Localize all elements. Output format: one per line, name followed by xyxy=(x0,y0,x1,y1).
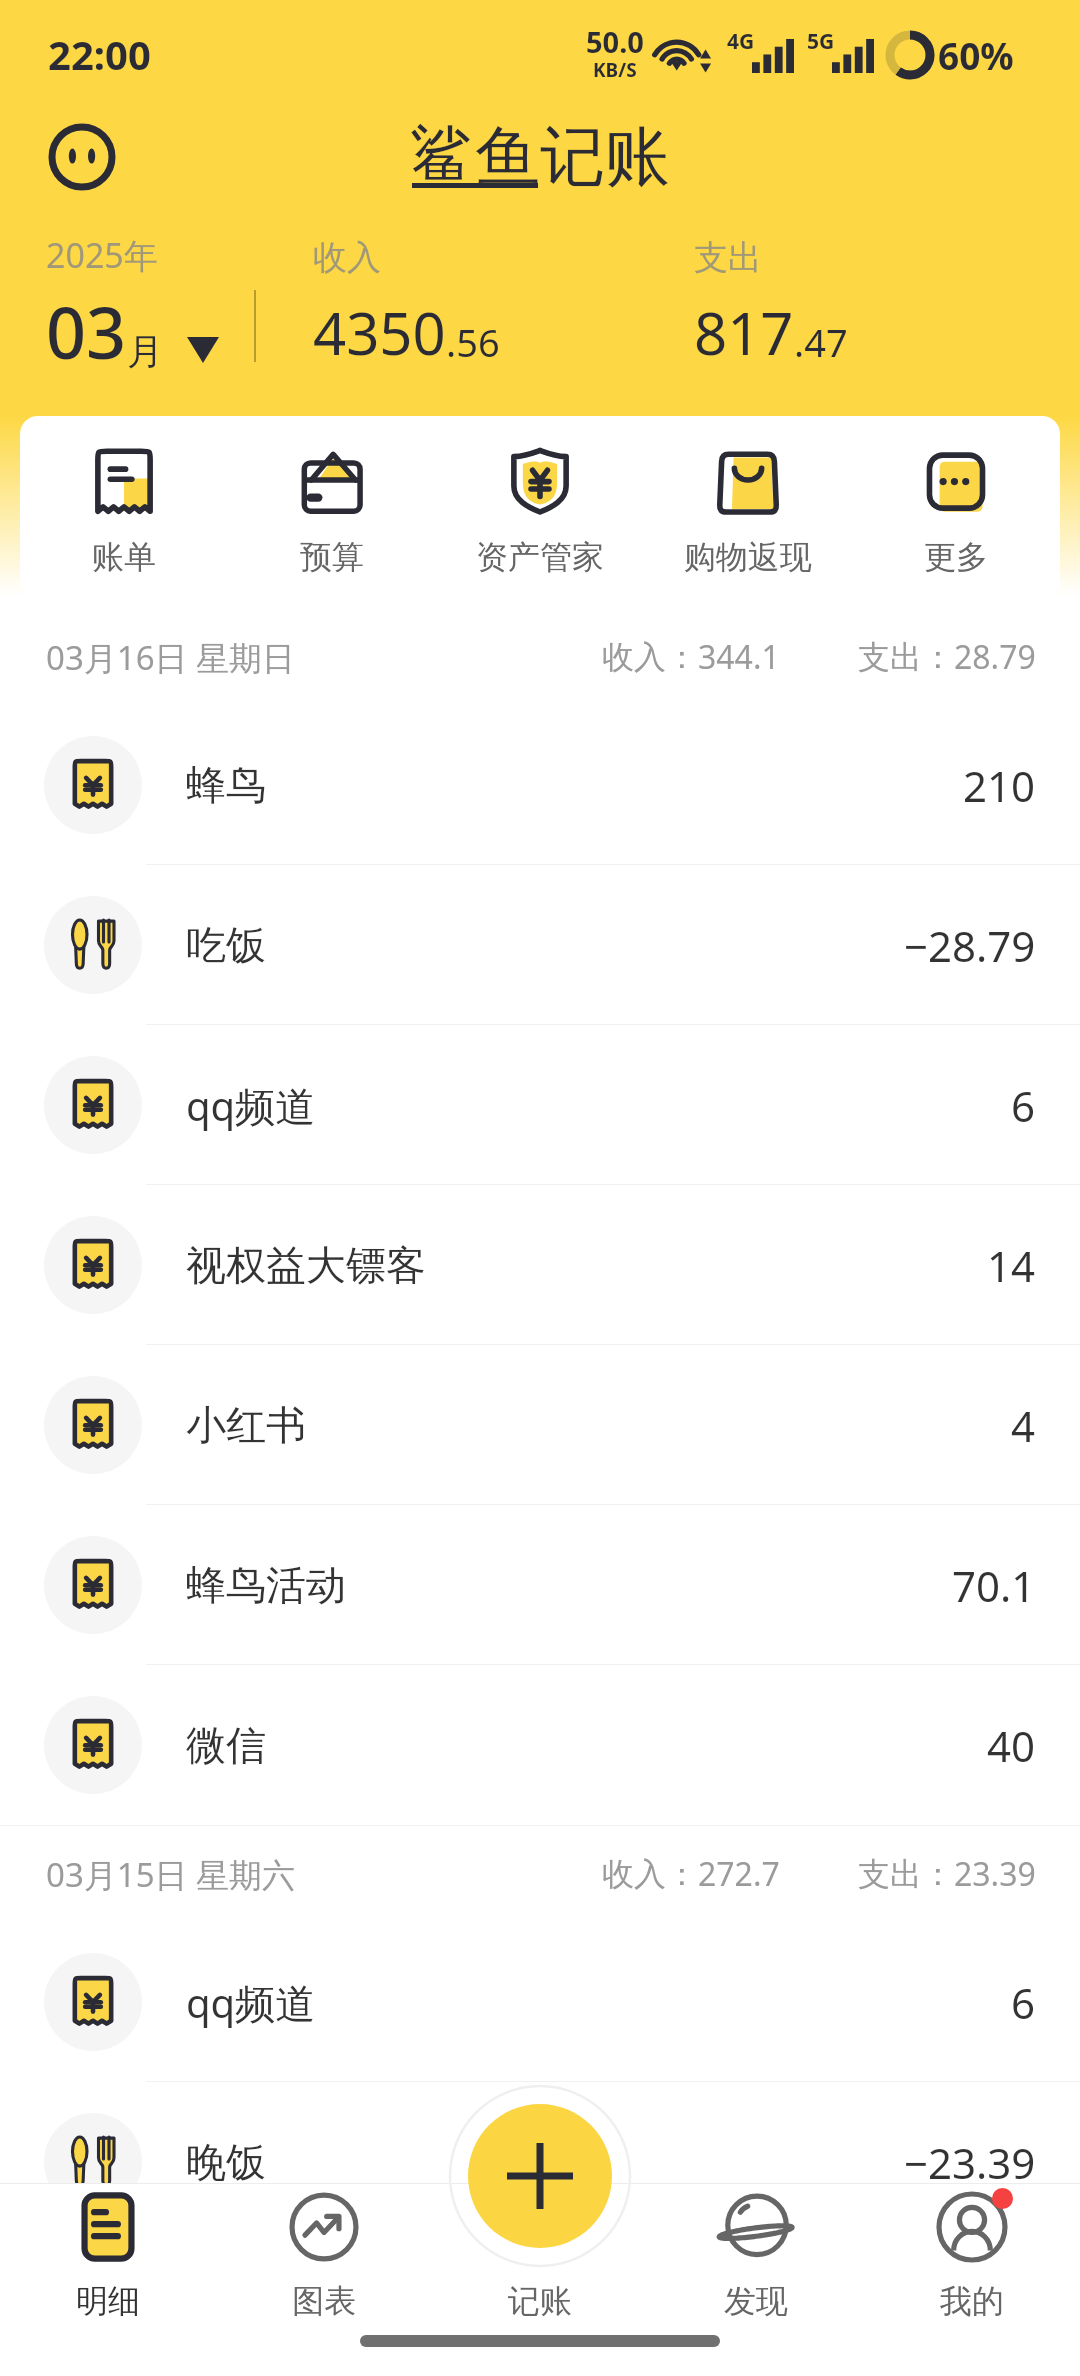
staticText: 图表 xyxy=(292,2281,356,2321)
staticText: 收入： xyxy=(602,637,698,677)
staticText: 03月15日 星期六 xyxy=(46,1852,296,1897)
staticText: 购物返现 xyxy=(684,537,812,577)
button[interactable]: qq频道 xyxy=(0,1922,1080,2082)
staticText: 40 xyxy=(987,1717,1036,1774)
button[interactable]: 发现 xyxy=(648,2183,864,2376)
button[interactable]: 蜂鸟 xyxy=(0,705,1080,865)
staticText: 资产管家 xyxy=(476,537,604,577)
staticText: 4 xyxy=(1011,1397,1036,1454)
staticText: .47 xyxy=(794,316,848,368)
staticText: 14 xyxy=(987,1237,1036,1294)
button[interactable]: 吃饭 xyxy=(0,865,1080,1025)
staticText: 272.7 xyxy=(698,1852,780,1896)
staticText: 22:00 xyxy=(48,27,151,81)
staticText: 蜂鸟活动 xyxy=(186,1560,346,1610)
staticText: 账单 xyxy=(92,537,156,577)
staticText: 晚饭 xyxy=(186,2137,266,2187)
staticText: 吃饭 xyxy=(186,920,266,970)
button[interactable]: 账单 xyxy=(20,443,228,598)
staticText: 50.0 xyxy=(586,22,644,61)
button[interactable]: 记账 xyxy=(432,2183,648,2376)
button[interactable]: qq频道 xyxy=(0,1025,1080,1185)
button[interactable]: 微信 xyxy=(0,1665,1080,1825)
button[interactable]: 我的 xyxy=(864,2183,1080,2376)
staticText: 收入： xyxy=(602,1854,698,1894)
staticText: 明细 xyxy=(76,2281,140,2321)
staticText: 蜂鸟 xyxy=(186,760,266,810)
staticText: 344.1 xyxy=(698,635,780,679)
button[interactable]: 晚饭 xyxy=(0,2082,1080,2242)
button[interactable]: 购物返现 xyxy=(644,443,852,598)
staticText: .56 xyxy=(446,316,500,368)
staticText: 817 xyxy=(694,293,794,372)
staticText: 2025年 xyxy=(46,232,158,278)
staticText: 微信 xyxy=(186,1720,266,1770)
staticText: −28.79 xyxy=(904,917,1036,974)
button[interactable]: 图表 xyxy=(216,2183,432,2376)
staticText: 更多 xyxy=(924,537,988,577)
staticText: 支出： xyxy=(858,637,954,677)
staticText: qq频道 xyxy=(186,1975,316,2030)
staticText: 6 xyxy=(1011,1974,1036,2031)
staticText: 支出： xyxy=(858,1854,954,1894)
staticText: 23.39 xyxy=(954,1852,1036,1896)
staticText: 70.1 xyxy=(952,1557,1036,1614)
button[interactable]: 小红书 xyxy=(0,1345,1080,1505)
button[interactable]: Add record xyxy=(468,2104,612,2248)
staticText: 03月16日 星期日 xyxy=(46,635,296,680)
staticText: 视权益大镖客 xyxy=(186,1240,426,1290)
staticText: 收入 xyxy=(313,236,381,279)
staticText: 28.79 xyxy=(954,635,1036,679)
staticText: 小红书 xyxy=(186,1400,306,1450)
staticText: −23.39 xyxy=(904,2134,1036,2191)
button[interactable]: 更多 xyxy=(852,443,1060,598)
staticText: 鲨鱼记账 xyxy=(410,116,670,198)
staticText: 记账 xyxy=(508,2281,572,2321)
button[interactable]: 视权益大镖客 xyxy=(0,1185,1080,1345)
staticText: KB/S xyxy=(593,57,637,83)
staticText: 210 xyxy=(963,757,1036,814)
staticText: qq频道 xyxy=(186,1078,316,1133)
staticText: 4350 xyxy=(313,293,446,372)
staticText: 6 xyxy=(1011,1077,1036,1134)
button[interactable]: Profile xyxy=(48,123,116,191)
staticText: 支出 xyxy=(694,236,762,279)
staticText: 03 xyxy=(46,284,127,379)
staticText: 5G xyxy=(807,27,835,56)
staticText: 预算 xyxy=(300,537,364,577)
staticText: 月 xyxy=(127,329,163,374)
staticText: 60% xyxy=(938,30,1014,80)
button[interactable]: 资产管家 xyxy=(436,443,644,598)
button[interactable]: 蜂鸟活动 xyxy=(0,1505,1080,1665)
staticText: 发现 xyxy=(724,2281,788,2321)
button[interactable]: 预算 xyxy=(228,443,436,598)
staticText: 4G xyxy=(727,27,755,56)
staticText: 我的 xyxy=(940,2281,1004,2321)
button[interactable]: 明细 xyxy=(0,2183,216,2376)
